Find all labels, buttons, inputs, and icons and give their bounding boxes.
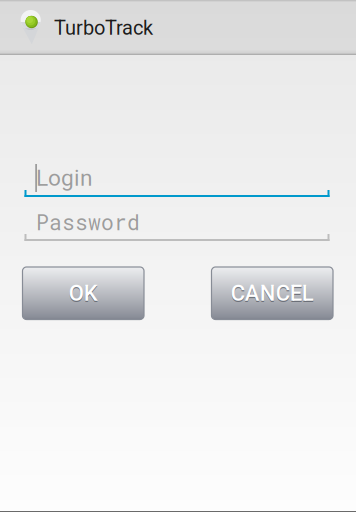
staticText: TurboTrack xyxy=(54,16,153,39)
staticText: Password xyxy=(36,208,140,236)
staticText: CANCEL xyxy=(231,280,314,306)
button[interactable]: CANCEL xyxy=(211,267,333,319)
staticText: CANCEL xyxy=(231,282,314,307)
button[interactable]: OK xyxy=(22,267,144,319)
staticText: OK xyxy=(69,280,98,306)
staticText: OK xyxy=(69,282,98,307)
staticText: Login xyxy=(36,165,93,191)
